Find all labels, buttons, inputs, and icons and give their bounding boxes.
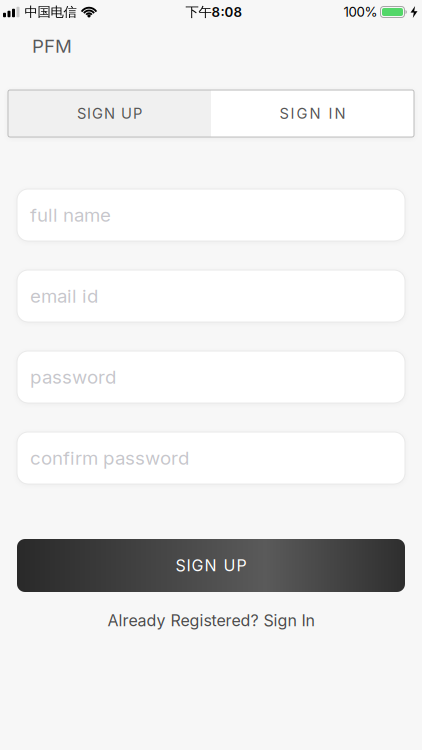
staticText: S I G N U P <box>77 105 142 122</box>
button[interactable]: full name <box>17 189 405 241</box>
staticText: password <box>30 366 116 388</box>
staticText: full name <box>30 204 111 226</box>
button[interactable]: S I G N U P <box>17 539 405 592</box>
button[interactable]: email id <box>17 270 405 322</box>
staticText: 中国电信 <box>24 4 76 20</box>
staticText: 100% <box>343 4 377 20</box>
staticText: email id <box>30 285 98 307</box>
staticText: 下午8:08 <box>185 4 242 20</box>
staticText: S I G N I N <box>279 105 345 122</box>
staticText: confirm password <box>30 447 189 469</box>
staticText: Already Registered? Sign In <box>107 611 314 630</box>
button[interactable]: Already Registered? Sign In <box>107 611 314 630</box>
staticText: S I G N U P <box>175 556 246 575</box>
button[interactable]: confirm password <box>17 432 405 484</box>
button[interactable]: S I G N U P <box>8 90 211 137</box>
button[interactable]: password <box>17 351 405 403</box>
staticText: PFM <box>32 35 72 57</box>
button[interactable]: S I G N I N <box>211 90 414 137</box>
